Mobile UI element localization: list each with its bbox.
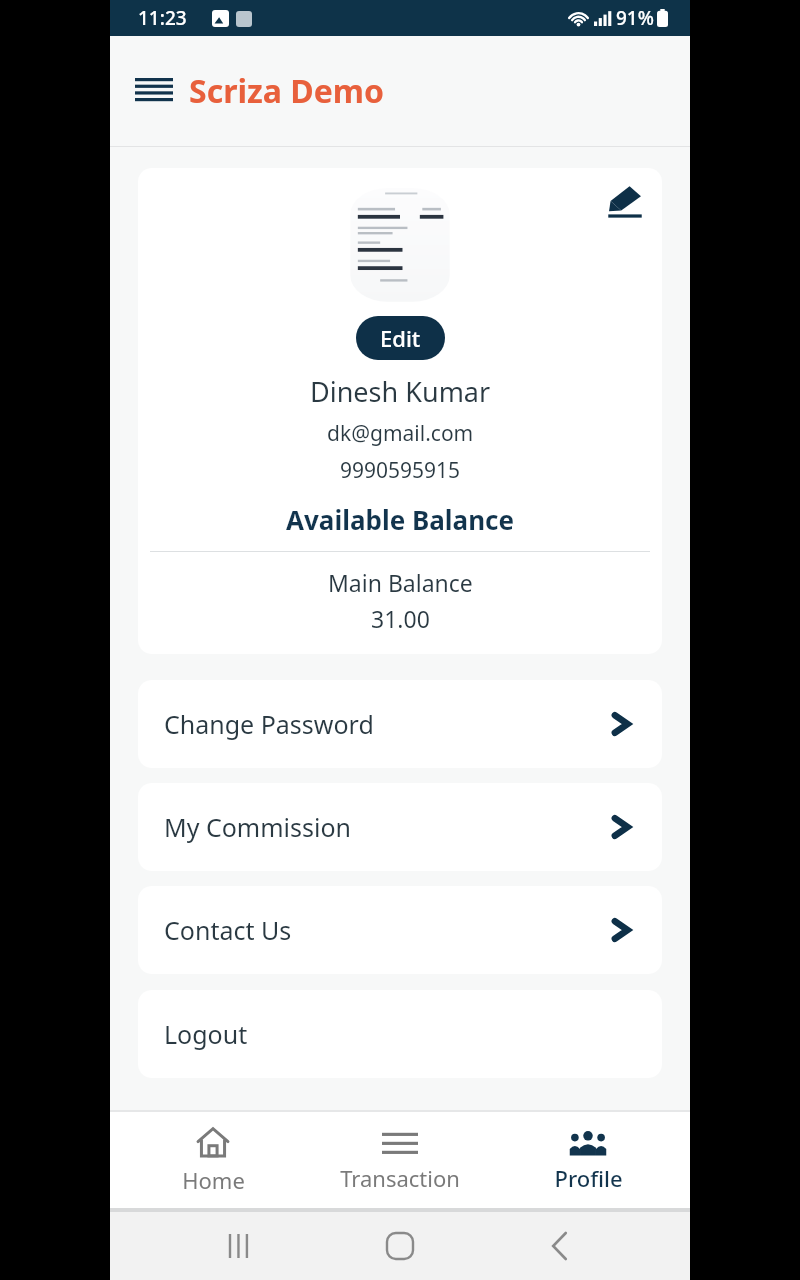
staticText: Home: [182, 1165, 245, 1195]
staticText: dk@gmail.com: [327, 419, 474, 448]
staticText: Dinesh Kumar: [310, 373, 491, 410]
button[interactable]: Edit profile: [602, 180, 648, 226]
button[interactable]: Logout: [138, 990, 662, 1078]
button[interactable]: My Commission: [138, 783, 662, 871]
button[interactable]: Open navigation menu: [128, 65, 180, 117]
staticText: 31.00: [371, 603, 430, 634]
staticText: Logout: [164, 1017, 248, 1051]
button[interactable]: Profile: [503, 1122, 673, 1199]
staticText: Transaction: [340, 1163, 460, 1193]
staticText: Contact Us: [164, 913, 292, 947]
staticText: Available Balance: [286, 502, 514, 537]
staticText: Scriza Demo: [189, 69, 385, 113]
staticText: Profile: [554, 1163, 623, 1193]
button[interactable]: Contact Us: [138, 886, 662, 974]
staticText: 91%: [616, 5, 654, 31]
staticText: 11:23: [138, 5, 187, 31]
staticText: 9990595915: [340, 456, 461, 485]
staticText: Change Password: [164, 707, 374, 741]
button[interactable]: Edit: [356, 316, 445, 360]
button[interactable]: Transaction: [315, 1122, 485, 1199]
staticText: Edit: [380, 323, 421, 353]
button[interactable]: Change Password: [138, 680, 662, 768]
staticText: Main Balance: [328, 567, 473, 598]
staticText: My Commission: [164, 810, 352, 844]
button[interactable]: Home: [128, 1120, 298, 1201]
